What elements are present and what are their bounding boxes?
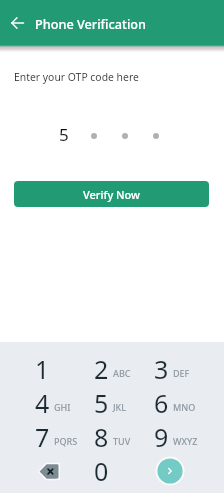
staticText: TUV	[113, 435, 131, 447]
staticText: 8	[94, 420, 109, 454]
staticText: GHI	[54, 401, 71, 413]
button[interactable]: 8	[71, 420, 131, 454]
staticText: 9	[154, 420, 169, 454]
staticText: Verify Now	[83, 187, 140, 202]
button[interactable]: 5	[71, 386, 131, 420]
staticText: 3	[154, 352, 169, 386]
staticText: WXYZ	[173, 435, 198, 447]
staticText: DEF	[173, 367, 190, 379]
button[interactable]: 0	[71, 454, 131, 488]
button[interactable]: 6	[131, 386, 191, 420]
staticText: 6	[154, 386, 169, 420]
staticText: 7	[35, 420, 50, 454]
button[interactable]: 4	[12, 386, 72, 420]
staticText: Phone Verification	[35, 15, 147, 32]
staticText: 4	[35, 386, 50, 420]
staticText: ABC	[113, 367, 131, 379]
button[interactable]: 1	[12, 352, 72, 386]
button[interactable]: 3	[131, 352, 191, 386]
staticText: PQRS	[54, 435, 78, 447]
staticText: Enter your OTP code here	[14, 70, 139, 84]
button[interactable]: Submit	[155, 456, 185, 486]
staticText: 0	[94, 454, 109, 488]
staticText: 1	[35, 352, 50, 386]
button[interactable]: Back	[0, 0, 35, 46]
staticText: JKL	[113, 401, 127, 413]
staticText: 2	[94, 352, 109, 386]
staticText: 5	[59, 123, 69, 146]
staticText: 5	[94, 386, 109, 420]
button[interactable]: 7	[12, 420, 72, 454]
staticText: MNO	[173, 401, 196, 413]
button[interactable]: 9	[131, 420, 191, 454]
button[interactable]: Backspace	[12, 454, 72, 488]
button[interactable]: Verify Now	[14, 181, 209, 207]
button[interactable]: 2	[71, 352, 131, 386]
